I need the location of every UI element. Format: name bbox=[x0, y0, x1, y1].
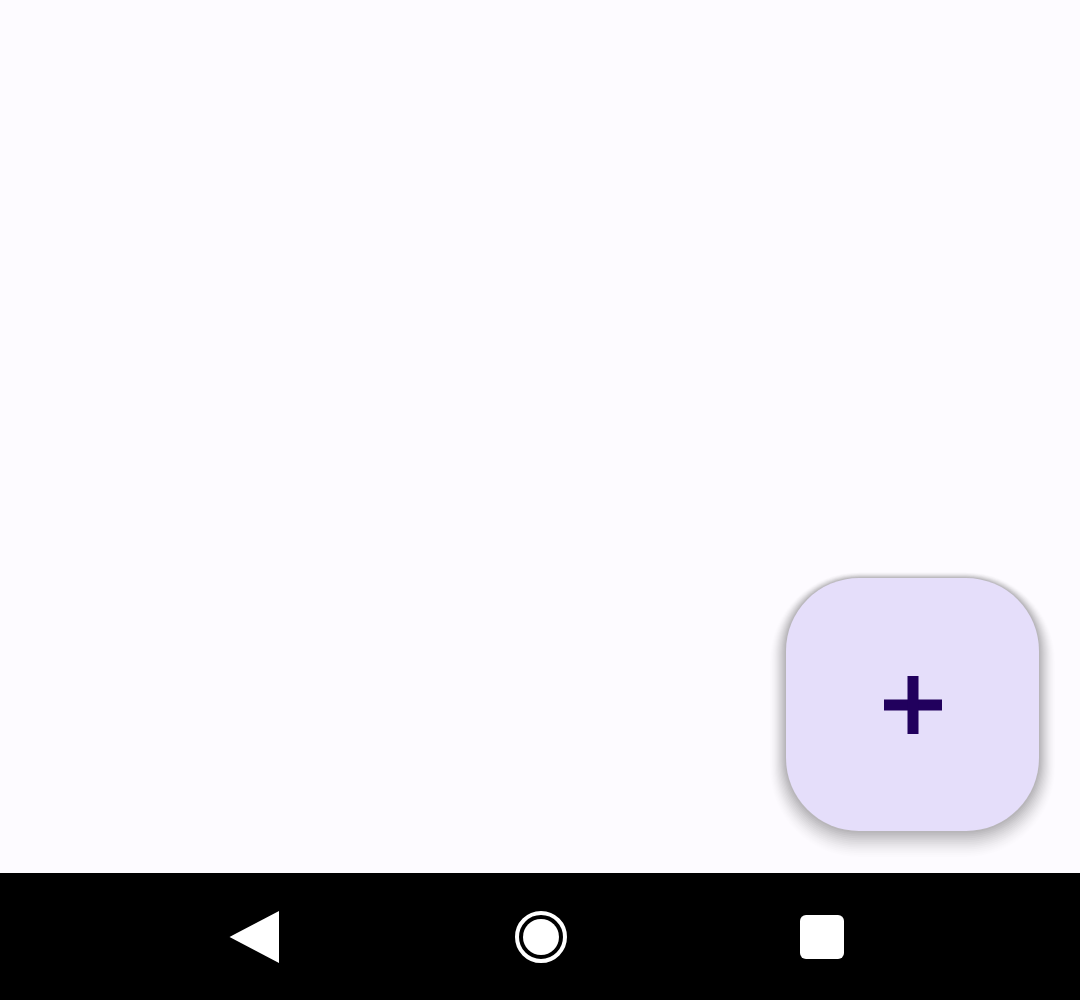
button[interactable]: Back bbox=[186, 873, 326, 1000]
button[interactable]: Recent apps bbox=[752, 873, 892, 1000]
button[interactable]: Home bbox=[471, 873, 611, 1000]
button[interactable]: Add bbox=[786, 578, 1039, 831]
